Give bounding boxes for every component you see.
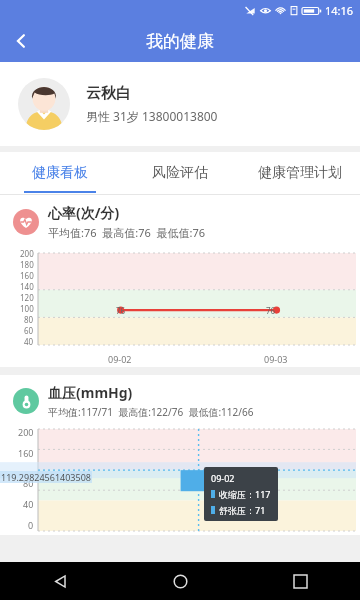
staticText: 76 [266,305,276,316]
staticText: 160 [18,447,34,459]
button[interactable]: Home [120,562,240,600]
staticText: 14:16 [325,3,354,18]
button[interactable]: 心率(次/分) [0,195,360,367]
staticText: 200 [18,426,34,438]
staticText: 平均值:76 最高值:76 最低值:76 [48,225,206,240]
staticText: 血压(mmHg) [48,383,133,402]
staticText: 119.29824561403508 [1,471,91,483]
staticText: 60 [24,325,34,336]
staticText: 收缩压：117 [219,488,271,500]
staticText: 健康管理计划 [258,164,342,182]
staticText: 40 [24,336,34,345]
button[interactable]: Recent apps [240,562,360,600]
staticText: 云秋白 [86,84,131,103]
staticText: 舒张压：71 [219,504,266,516]
button[interactable]: 健康看板 [0,152,120,194]
staticText: 风险评估 [152,164,208,182]
button[interactable]: 健康管理计划 [240,152,360,194]
staticText: 80 [23,477,34,489]
button[interactable]: Back [0,562,120,600]
button[interactable]: 云秋白 [0,62,360,146]
staticText: 09-02 [211,472,235,484]
staticText: 200 [20,248,34,259]
staticText: 160 [20,270,34,281]
staticText: 09-03 [264,353,288,365]
staticText: 健康看板 [32,164,88,182]
staticText: 平均值:117/71 最高值:122/76 最低值:112/66 [48,405,254,419]
staticText: 09-02 [108,353,132,365]
staticText: 80 [24,314,34,325]
staticText: 120 [20,292,34,303]
staticText: 76 [116,305,126,316]
button[interactable]: 风险评估 [120,152,240,194]
button[interactable]: 血压(mmHg) [0,375,360,535]
staticText: 180 [20,259,34,270]
staticText: 140 [20,281,34,292]
button[interactable]: Back [0,20,42,62]
staticText: 男性 31岁 13800013800 [86,108,218,124]
staticText: 40 [23,498,34,510]
staticText: 心率(次/分) [48,203,120,222]
staticText: 我的健康 [146,31,214,52]
staticText: 100 [20,303,34,314]
staticText: 0 [28,519,34,531]
